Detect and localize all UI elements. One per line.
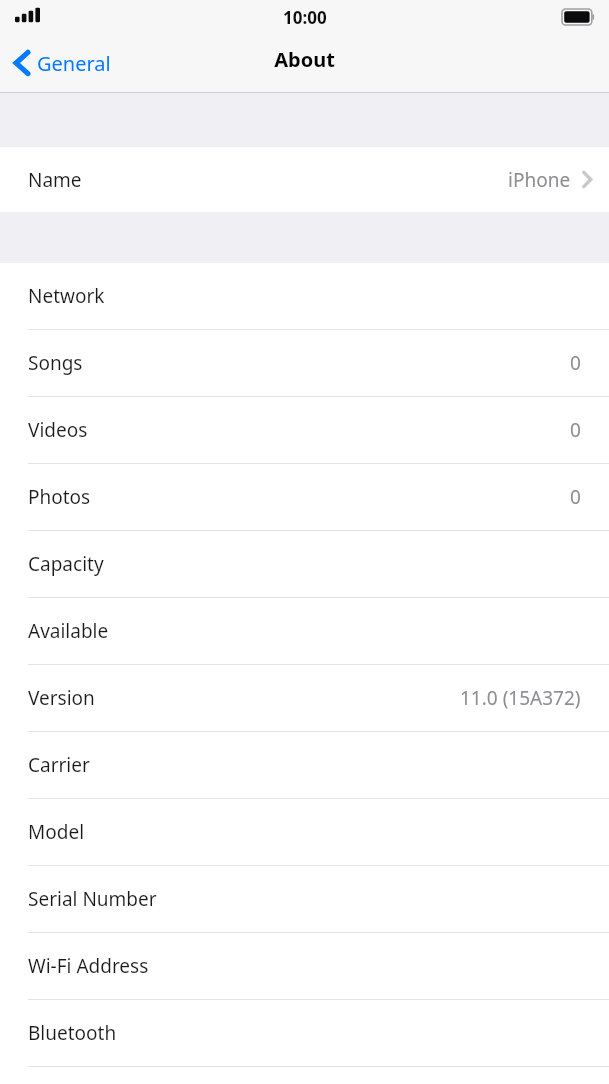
- staticText: Carrier: [28, 752, 90, 778]
- button[interactable]: Capacity: [0, 531, 609, 597]
- staticText: iPhone: [508, 167, 571, 193]
- staticText: Songs: [28, 350, 83, 376]
- staticText: 0: [570, 417, 581, 443]
- button[interactable]: Carrier: [0, 732, 609, 798]
- button[interactable]: Wi-Fi Address: [0, 933, 609, 999]
- button[interactable]: Photos: [0, 464, 609, 530]
- staticText: 0: [570, 484, 581, 510]
- button[interactable]: Bluetooth: [0, 1000, 609, 1066]
- button[interactable]: Songs: [0, 330, 609, 396]
- button[interactable]: Serial Number: [0, 866, 609, 932]
- staticText: Wi-Fi Address: [28, 953, 149, 979]
- button[interactable]: Available: [0, 598, 609, 664]
- button[interactable]: Name: [0, 147, 609, 212]
- staticText: Photos: [28, 484, 91, 510]
- staticText: Videos: [28, 417, 88, 443]
- staticText: Name: [28, 167, 82, 193]
- staticText: Available: [28, 618, 109, 644]
- staticText: 0: [570, 350, 581, 376]
- staticText: Version: [28, 685, 95, 711]
- staticText: Serial Number: [28, 886, 157, 912]
- staticText: General: [37, 50, 111, 77]
- staticText: Model: [28, 819, 85, 845]
- staticText: Bluetooth: [28, 1020, 117, 1046]
- staticText: About: [274, 46, 335, 73]
- button[interactable]: General: [0, 34, 123, 92]
- staticText: Network: [28, 283, 105, 309]
- button[interactable]: Version: [0, 665, 609, 731]
- staticText: Capacity: [28, 551, 104, 577]
- button[interactable]: Network: [0, 263, 609, 329]
- staticText: 11.0 (15A372): [460, 685, 581, 711]
- staticText: 10:00: [283, 6, 327, 29]
- button[interactable]: Model: [0, 799, 609, 865]
- button[interactable]: Videos: [0, 397, 609, 463]
